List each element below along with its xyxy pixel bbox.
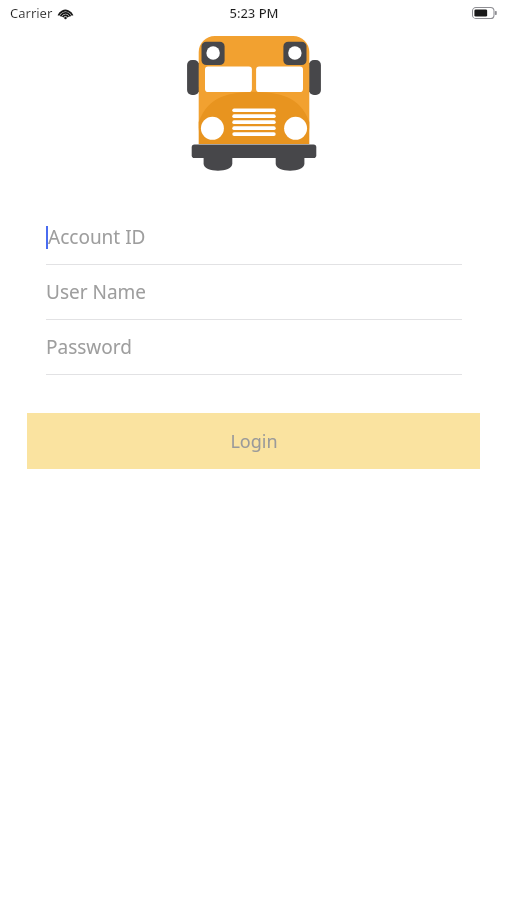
button[interactable]: User Name bbox=[0, 265, 507, 320]
staticText: Carrier bbox=[10, 4, 53, 22]
staticText: Login bbox=[230, 429, 278, 454]
staticText: Password bbox=[46, 334, 132, 360]
button[interactable]: Account ID bbox=[0, 210, 507, 265]
staticText: Account ID bbox=[48, 224, 146, 250]
button[interactable]: Login bbox=[27, 413, 480, 469]
staticText: User Name bbox=[46, 279, 147, 305]
button[interactable]: Password bbox=[0, 320, 507, 375]
staticText: 5:23 PM bbox=[229, 4, 279, 22]
